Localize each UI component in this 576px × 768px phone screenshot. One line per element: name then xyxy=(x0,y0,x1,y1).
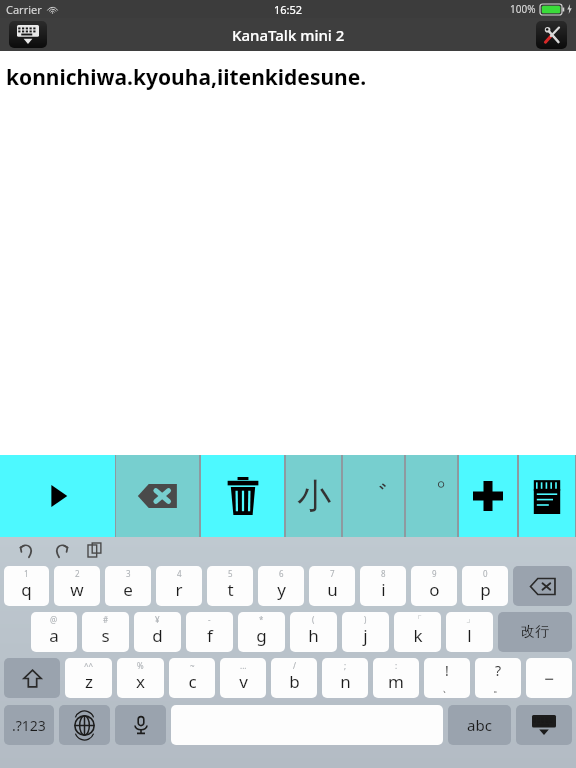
button[interactable]: Shift xyxy=(4,658,60,698)
staticText: s xyxy=(101,624,110,647)
button[interactable]: Add xyxy=(459,455,517,537)
staticText: l xyxy=(467,624,472,647)
button[interactable]: Paste xyxy=(82,537,108,563)
button[interactable]: 「 xyxy=(394,612,441,652)
button[interactable]: 8 xyxy=(360,566,406,606)
button[interactable]: 1 xyxy=(4,566,49,606)
staticText: ゜ xyxy=(416,477,447,515)
button[interactable]: 7 xyxy=(309,566,355,606)
staticText: @ xyxy=(50,614,58,625)
staticText: o xyxy=(429,578,440,601)
button[interactable]: 4 xyxy=(156,566,202,606)
staticText: ~ xyxy=(190,660,195,671)
button[interactable]: * xyxy=(238,612,285,652)
button[interactable]: Hide keyboard xyxy=(516,705,572,745)
staticText: abc xyxy=(467,715,492,735)
button[interactable]: Undo xyxy=(14,537,40,563)
button[interactable]: ? xyxy=(475,658,521,698)
staticText: # xyxy=(103,614,109,625)
staticText: ; xyxy=(344,660,347,671)
staticText: 100% xyxy=(510,2,536,16)
button[interactable]: ... xyxy=(220,658,266,698)
staticText: ¥ xyxy=(155,614,160,625)
staticText: z xyxy=(85,670,93,693)
button[interactable]: Backspace xyxy=(513,566,572,606)
staticText: u xyxy=(327,578,338,601)
button[interactable]: 6 xyxy=(258,566,304,606)
staticText: p xyxy=(480,578,491,601)
button[interactable]: 0 xyxy=(462,566,508,606)
button[interactable]: Dakuten xyxy=(343,455,404,537)
button[interactable]: : xyxy=(373,658,419,698)
button[interactable]: Settings xyxy=(536,21,567,49)
button[interactable]: ! xyxy=(424,658,470,698)
button[interactable]: ( xyxy=(290,612,337,652)
button[interactable]: 」 xyxy=(446,612,493,652)
button[interactable]: .?123 xyxy=(4,705,54,745)
staticText: 。 xyxy=(493,681,504,695)
staticText: 「 xyxy=(414,614,422,624)
staticText: f xyxy=(207,624,213,647)
staticText: 4 xyxy=(177,568,182,579)
button[interactable]: Switch language xyxy=(59,705,110,745)
staticText: KanaTalk mini 2 xyxy=(232,25,345,45)
staticText: r xyxy=(175,578,183,601)
button[interactable]: Redo xyxy=(48,537,74,563)
button[interactable]: Speak xyxy=(0,455,115,537)
staticText: 8 xyxy=(381,568,386,579)
staticText: c xyxy=(188,670,197,693)
staticText: ( xyxy=(312,614,315,625)
button[interactable]: / xyxy=(271,658,317,698)
button[interactable]: % xyxy=(117,658,164,698)
button[interactable]: ~ xyxy=(169,658,215,698)
button[interactable]: ¥ xyxy=(134,612,181,652)
button[interactable]: ^^ xyxy=(65,658,112,698)
staticText: ) xyxy=(364,614,367,625)
button[interactable]: 改行 xyxy=(498,612,572,652)
button[interactable]: 9 xyxy=(411,566,457,606)
button[interactable]: @ xyxy=(31,612,77,652)
staticText: ! xyxy=(445,661,449,680)
button[interactable]: # xyxy=(82,612,129,652)
staticText: w xyxy=(70,578,84,601)
staticText: 7 xyxy=(330,568,335,579)
button[interactable]: Handakuten xyxy=(406,455,457,537)
staticText: 小 xyxy=(297,475,331,518)
staticText: 改行 xyxy=(521,623,549,641)
staticText: 」 xyxy=(466,614,474,624)
staticText: / xyxy=(293,660,296,671)
button[interactable]: ) xyxy=(342,612,389,652)
staticText: - xyxy=(208,614,211,625)
staticText: 16:52 xyxy=(274,2,303,17)
button[interactable]: 3 xyxy=(105,566,151,606)
staticText: g xyxy=(256,624,267,647)
staticText: 3 xyxy=(126,568,131,579)
staticText: 6 xyxy=(279,568,284,579)
staticText: x xyxy=(136,670,145,693)
button[interactable]: abc xyxy=(448,705,511,745)
staticText: m xyxy=(388,670,404,693)
staticText: e xyxy=(123,578,133,601)
staticText: k xyxy=(413,624,423,647)
button[interactable]: ; xyxy=(322,658,368,698)
staticText: − xyxy=(544,667,554,690)
staticText: h xyxy=(308,624,319,647)
staticText: a xyxy=(49,624,59,647)
staticText: 0 xyxy=(483,568,488,579)
staticText: Carrier xyxy=(6,2,42,17)
staticText: d xyxy=(152,624,163,647)
staticText: .?123 xyxy=(12,716,46,735)
button[interactable]: 2 xyxy=(54,566,100,606)
button[interactable]: 5 xyxy=(207,566,253,606)
button[interactable]: Small kana xyxy=(286,455,341,537)
button[interactable]: Hide keyboard xyxy=(9,21,47,48)
button[interactable]: Backspace xyxy=(116,455,199,537)
button[interactable]: Notes xyxy=(519,455,575,537)
button[interactable]: - xyxy=(186,612,233,652)
staticText: t xyxy=(227,578,234,601)
button[interactable]: Clear xyxy=(201,455,284,537)
staticText: : xyxy=(395,660,398,671)
button[interactable]: − xyxy=(526,658,572,698)
button[interactable]: Dictation xyxy=(115,705,166,745)
